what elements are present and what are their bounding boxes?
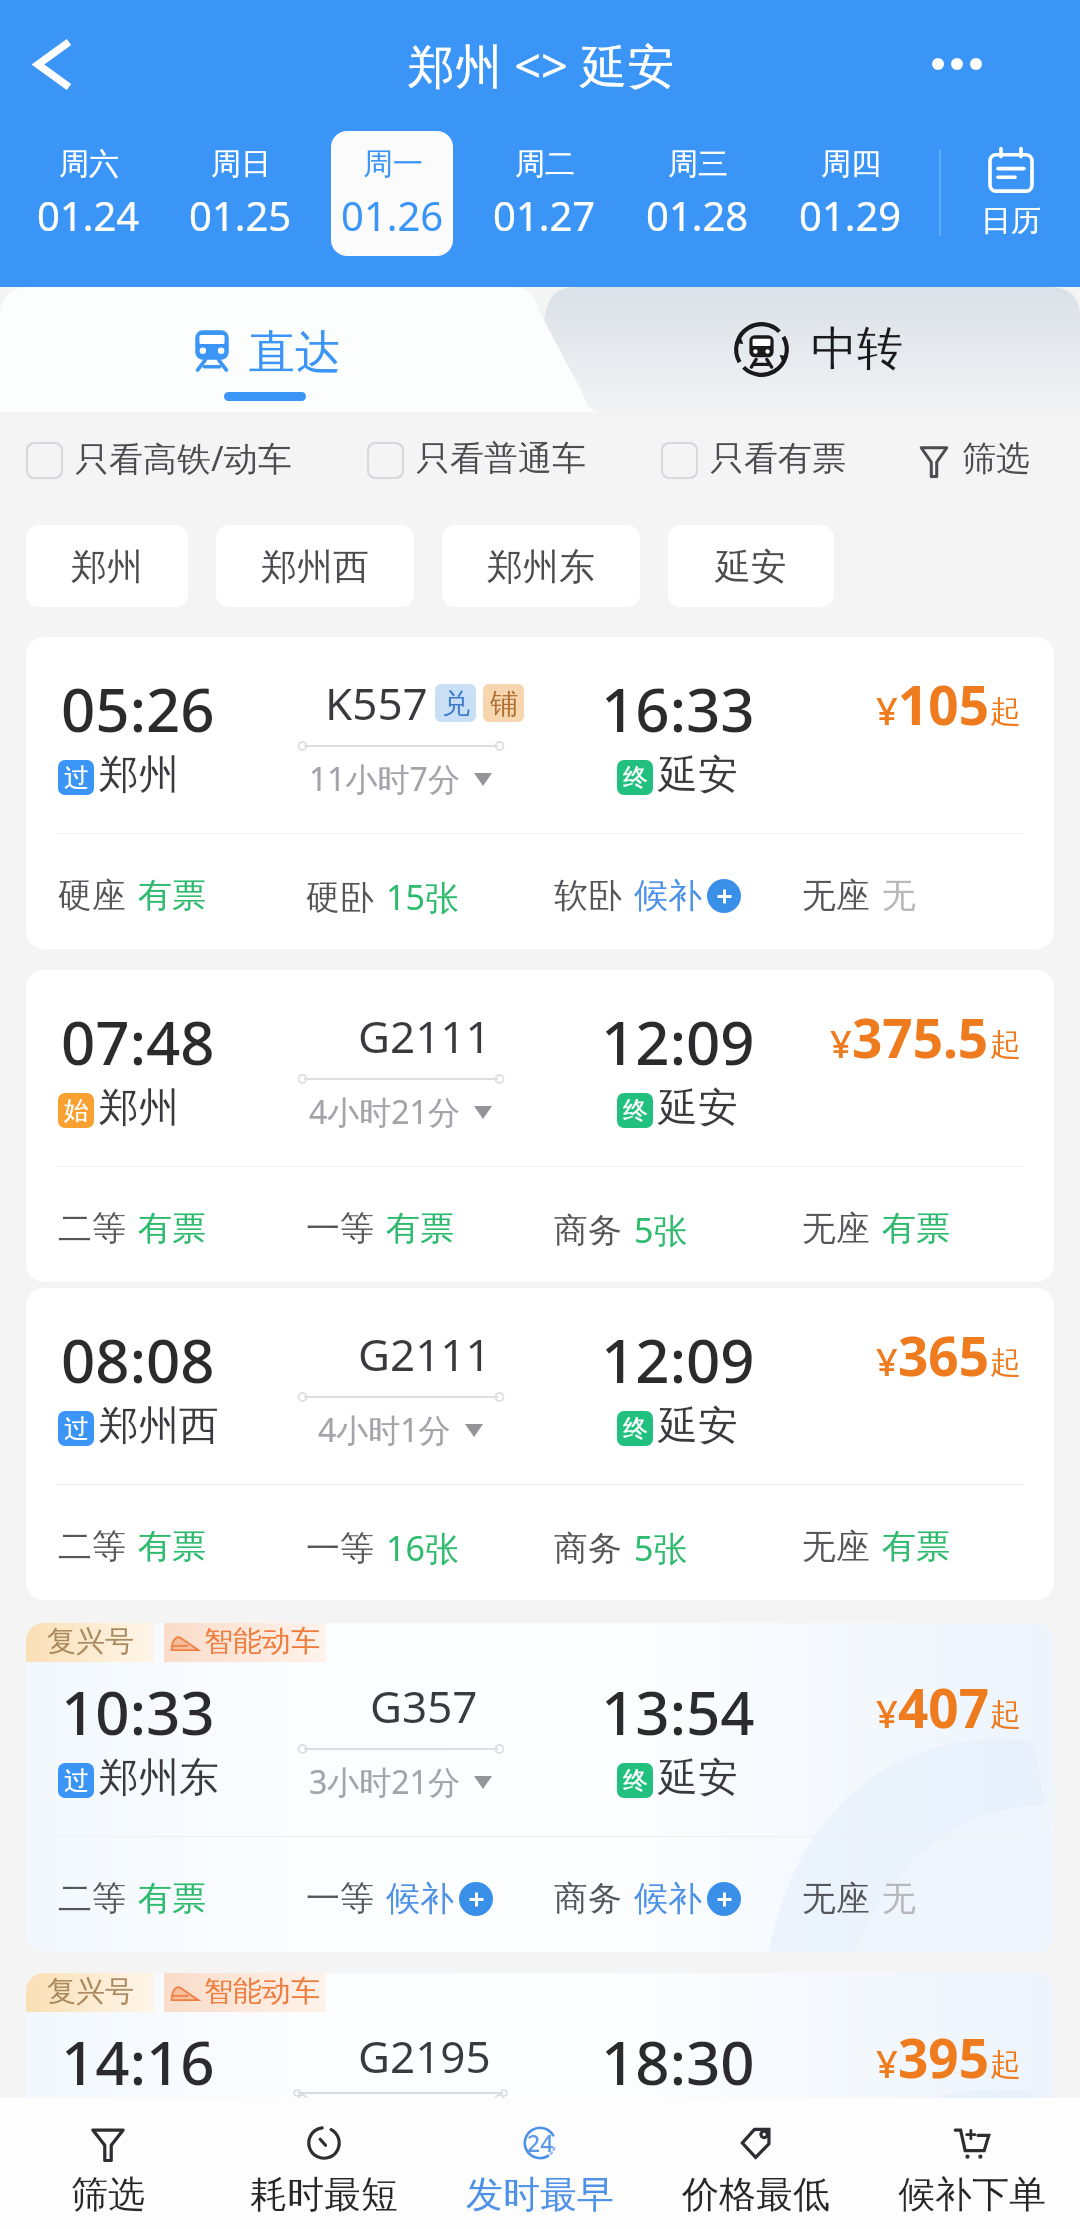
staticText: 商务 <box>554 1527 622 1570</box>
button[interactable]: Back <box>0 18 106 110</box>
staticText: 10:33 <box>61 1671 215 1753</box>
staticText: 候补下单 <box>898 2171 1046 2218</box>
button[interactable]: 08:08 <box>26 1288 1054 1600</box>
staticText: 无座 <box>802 1207 870 1250</box>
staticText: 耗时最短 <box>250 2171 398 2218</box>
staticText: 二等 <box>58 1877 126 1920</box>
staticText: 4小时1分 <box>318 1408 451 1452</box>
button[interactable]: 复兴号 <box>26 1623 1054 1952</box>
staticText: 15张 <box>386 874 459 920</box>
staticText: 有票 <box>386 1207 454 1250</box>
staticText: 4小时14分 <box>309 2110 460 2154</box>
button[interactable]: 只看普通车 <box>367 439 586 482</box>
staticText: 395 <box>898 2021 989 2093</box>
staticText: 有票 <box>138 1525 206 1568</box>
staticText: 407 <box>898 1671 989 1743</box>
button[interactable]: 郑州东 <box>442 525 640 607</box>
staticText: 周六 <box>59 145 119 183</box>
staticText: 无座 <box>802 1877 870 1920</box>
staticText: 郑州西 <box>99 1400 219 1450</box>
staticText: 4小时21分 <box>309 1090 460 1134</box>
staticText: 24 <box>527 2127 554 2158</box>
button[interactable]: 候补下单 <box>864 2098 1080 2229</box>
staticText: 过 <box>64 1413 89 1444</box>
button[interactable]: 周三 <box>636 131 759 256</box>
staticText: 16张 <box>386 1525 459 1571</box>
staticText: 郑州西 <box>261 544 369 589</box>
button[interactable]: 07:48 <box>26 970 1054 1282</box>
button[interactable]: 周二 <box>483 131 606 256</box>
staticText: 01.28 <box>646 188 749 242</box>
button[interactable]: 中转 <box>540 287 1080 412</box>
button[interactable]: 价格最低 <box>648 2098 864 2229</box>
staticText: 商务 <box>554 1209 622 1252</box>
staticText: 18:30 <box>601 2021 755 2103</box>
staticText: ¥ <box>876 2037 898 2089</box>
staticText: 5张 <box>634 1207 688 1253</box>
staticText: 有票 <box>882 1525 950 1568</box>
staticText: 05:26 <box>61 668 215 750</box>
staticText: 01.24 <box>37 188 140 242</box>
staticText: 商务 <box>554 1877 622 1920</box>
staticText: 过 <box>64 762 89 793</box>
staticText: 筛选 <box>962 437 1030 480</box>
button[interactable]: 24 <box>432 2098 648 2229</box>
button[interactable]: 郑州西 <box>216 525 414 607</box>
staticText: 日历 <box>981 202 1041 240</box>
staticText: 一等 <box>306 1527 374 1570</box>
staticText: 郑州 <box>71 544 143 589</box>
button[interactable]: 只看有票 <box>661 439 846 482</box>
staticText: 16:33 <box>601 668 755 750</box>
staticText: 有票 <box>138 1877 206 1920</box>
button[interactable]: 复兴号 <box>26 1973 1054 2229</box>
button[interactable]: 周六 <box>27 131 149 256</box>
staticText: 延安 <box>658 1400 738 1450</box>
staticText: 01.29 <box>799 188 902 242</box>
staticText: 中转 <box>811 320 903 376</box>
staticText: 12:09 <box>601 1319 755 1401</box>
staticText: 发时最早 <box>466 2171 614 2218</box>
staticText: 有票 <box>882 1207 950 1250</box>
staticText: 一等 <box>306 1207 374 1250</box>
button[interactable]: 耗时最短 <box>216 2098 432 2229</box>
button[interactable]: 直达 <box>0 287 540 412</box>
staticText: 兑 <box>442 686 470 721</box>
staticText: ¥ <box>876 684 898 736</box>
button[interactable]: More options <box>908 18 1006 110</box>
button[interactable]: 周日 <box>179 131 301 256</box>
staticText: 一等 <box>306 1877 374 1920</box>
staticText: 12:09 <box>601 1001 755 1083</box>
staticText: 有票 <box>138 874 206 917</box>
staticText: ¥ <box>876 1687 898 1739</box>
button[interactable]: 只看高铁/动车 <box>26 437 292 483</box>
button[interactable]: 郑州 <box>26 525 188 607</box>
staticText: 延安 <box>658 749 738 799</box>
staticText: 终 <box>623 1095 648 1126</box>
staticText: 郑州 <box>99 1082 179 1132</box>
staticText: 郑州 <box>99 749 179 799</box>
staticText: 过 <box>64 1765 89 1796</box>
button[interactable]: 05:26 <box>26 637 1054 949</box>
staticText: 周一 <box>363 145 423 183</box>
staticText: 105 <box>898 668 989 740</box>
staticText: 375.5 <box>852 1001 989 1073</box>
staticText: 候补 <box>386 1877 454 1920</box>
button[interactable]: Calendar <box>941 130 1080 257</box>
staticText: 智能动车 <box>204 1973 320 2010</box>
button[interactable]: 筛选 <box>0 2098 216 2229</box>
staticText: 候补 <box>634 1877 702 1920</box>
button[interactable]: 周四 <box>789 131 912 256</box>
staticText: 08:08 <box>61 1319 215 1401</box>
button[interactable]: 周一 <box>331 131 453 256</box>
staticText: 铺 <box>490 686 518 721</box>
staticText: G2195 <box>358 2026 491 2086</box>
button[interactable]: 延安 <box>668 525 834 607</box>
button[interactable]: 筛选 <box>918 436 1030 484</box>
